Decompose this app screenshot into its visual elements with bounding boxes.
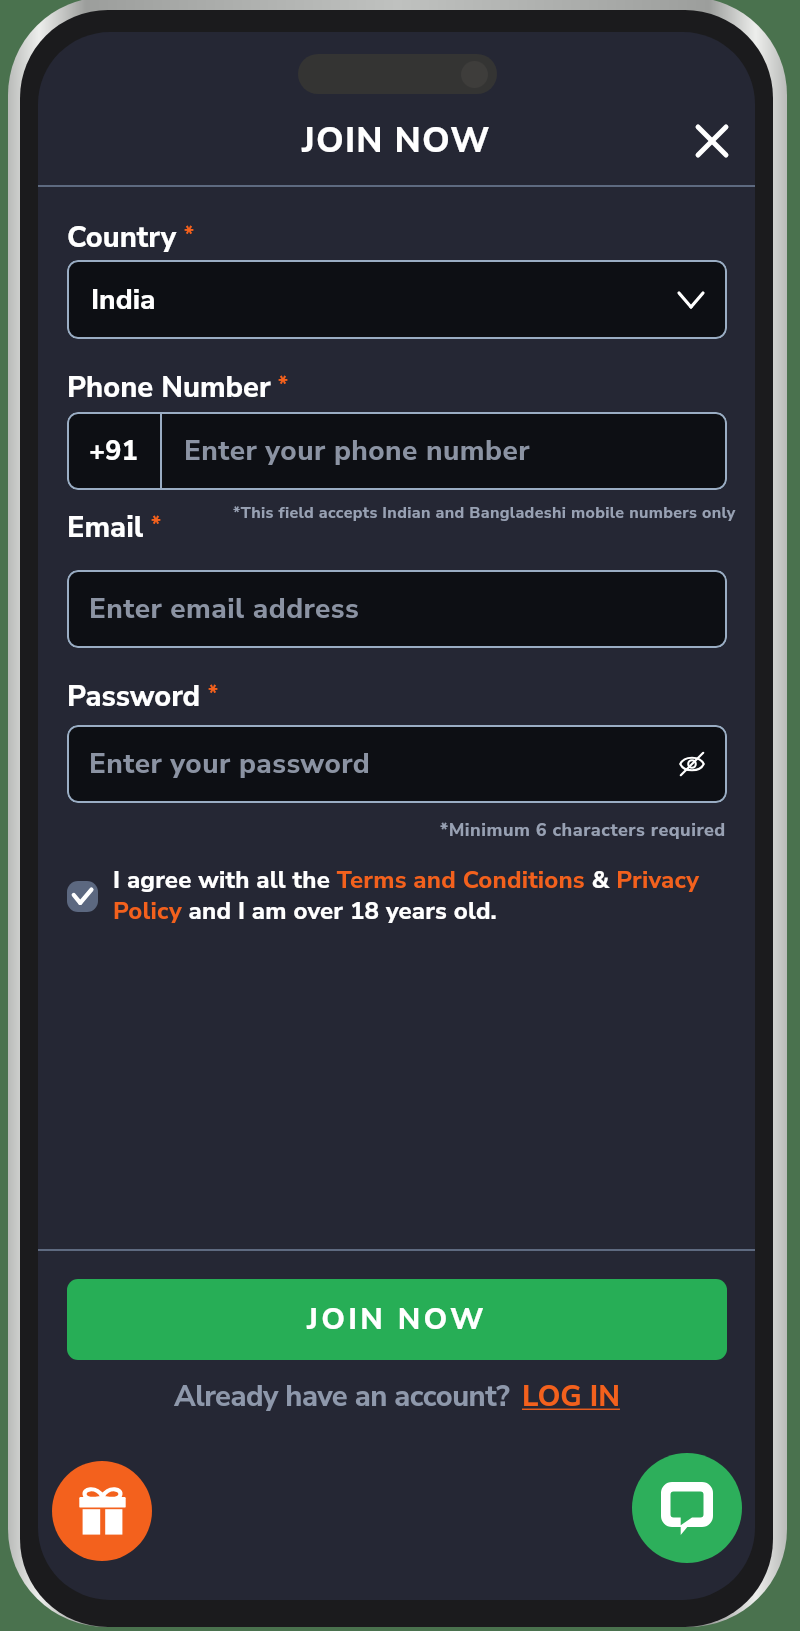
button[interactable]: Chat support bbox=[632, 1453, 742, 1563]
button[interactable]: LOG IN bbox=[522, 1377, 620, 1417]
staticText: Enter your password bbox=[89, 745, 371, 783]
button[interactable]: Rewards bbox=[52, 1461, 152, 1561]
button[interactable]: Close bbox=[686, 115, 738, 167]
staticText: I agree with all the Terms and Condition… bbox=[113, 864, 727, 928]
staticText: LOG IN bbox=[522, 1377, 620, 1417]
staticText: Already have an account? bbox=[174, 1377, 510, 1417]
staticText: JOIN NOW bbox=[307, 1299, 487, 1340]
staticText: Password bbox=[67, 677, 201, 717]
button[interactable]: JOIN NOW bbox=[67, 1279, 727, 1360]
staticText: *This field accepts Indian and Banglades… bbox=[233, 502, 736, 524]
button[interactable]: I agree with all the Terms and Condition… bbox=[67, 864, 727, 928]
staticText: Enter email address bbox=[89, 590, 360, 628]
staticText: India bbox=[91, 281, 679, 319]
staticText: +91 bbox=[89, 433, 138, 470]
staticText: Phone Number bbox=[67, 368, 271, 408]
staticText: Email bbox=[67, 508, 144, 548]
staticText: Country bbox=[67, 218, 177, 258]
staticText: * bbox=[208, 679, 218, 709]
staticText: * bbox=[184, 220, 194, 250]
button[interactable]: Show password bbox=[678, 750, 706, 778]
staticText: Enter your phone number bbox=[184, 432, 530, 470]
staticText: * bbox=[278, 370, 288, 400]
staticText: JOIN NOW bbox=[302, 117, 491, 165]
staticText: *Minimum 6 characters required bbox=[440, 818, 726, 843]
staticText: * bbox=[151, 510, 161, 540]
